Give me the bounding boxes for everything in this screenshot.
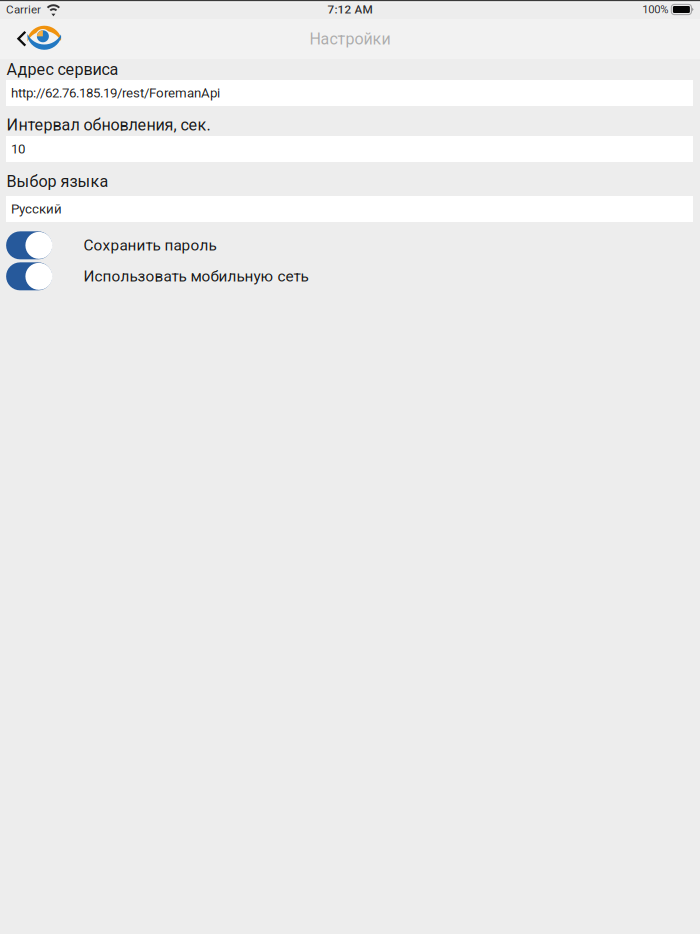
- staticText: 100%: [642, 3, 668, 16]
- staticText: Сохранить пароль: [83, 236, 216, 254]
- button[interactable]: Back: [12, 19, 67, 59]
- button[interactable]: 10: [6, 136, 693, 162]
- staticText: Выбор языка: [7, 172, 109, 191]
- staticText: Адрес сервиса: [7, 60, 119, 79]
- button[interactable]: Использовать мобильную сеть: [6, 262, 693, 290]
- button[interactable]: http://62.76.185.19/rest/ForemanApi: [6, 80, 693, 106]
- staticText: Интервал обновления, сек.: [7, 115, 211, 134]
- button[interactable]: Сохранить пароль: [6, 231, 693, 259]
- staticText: Настройки: [309, 30, 390, 48]
- staticText: Использовать мобильную сеть: [83, 267, 308, 285]
- staticText: Русский: [11, 201, 62, 217]
- staticText: 7:12 AM: [327, 3, 372, 16]
- staticText: http://62.76.185.19/rest/ForemanApi: [11, 85, 220, 101]
- staticText: Carrier: [6, 3, 41, 16]
- button[interactable]: Русский: [6, 196, 693, 222]
- staticText: 10: [11, 141, 25, 157]
